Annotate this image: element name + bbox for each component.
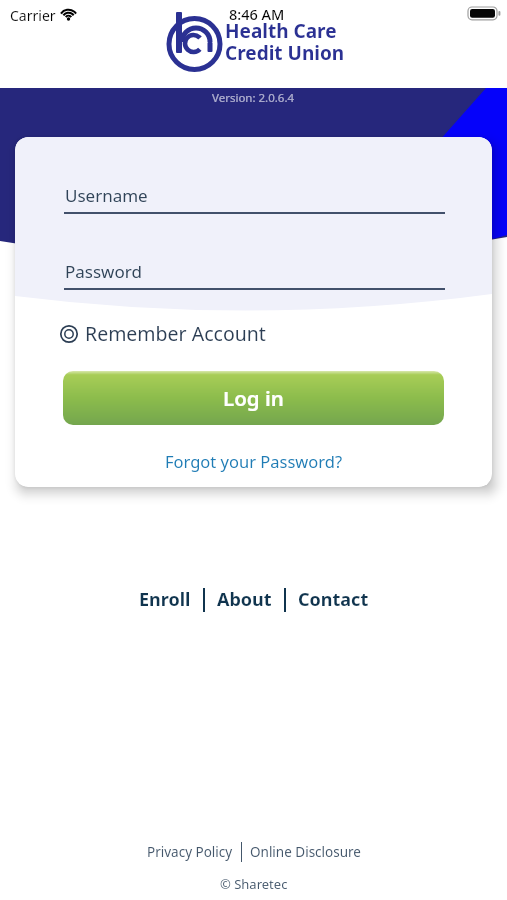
staticText: Health Care <box>225 18 337 44</box>
staticText: Username <box>65 184 148 207</box>
staticText: Version: 2.0.6.4 <box>212 90 295 106</box>
button[interactable]: Remember Account <box>59 320 266 344</box>
staticText: Carrier <box>10 6 56 25</box>
staticText: Log in <box>223 384 284 412</box>
button[interactable]: Username <box>64 173 445 214</box>
staticText: Forgot your Password? <box>165 450 343 472</box>
button[interactable]: Forgot your Password? <box>165 450 343 472</box>
staticText: Password <box>65 260 142 283</box>
staticText: About <box>217 587 272 612</box>
staticText: Contact <box>298 587 369 612</box>
staticText: © Sharetec <box>220 875 288 893</box>
staticText: Credit Union <box>225 40 345 66</box>
button[interactable]: Online Disclosure <box>250 843 361 861</box>
button[interactable]: Log in <box>63 371 444 425</box>
button[interactable]: Contact <box>298 587 369 612</box>
staticText: Privacy Policy <box>147 843 233 861</box>
staticText: Remember Account <box>85 320 266 344</box>
staticText: 8:46 AM <box>229 4 285 24</box>
button[interactable]: Enroll <box>139 587 191 612</box>
staticText: Online Disclosure <box>250 843 361 861</box>
button[interactable]: About <box>217 587 272 612</box>
staticText: Enroll <box>139 587 191 612</box>
button[interactable]: Password <box>64 249 445 290</box>
button[interactable]: Privacy Policy <box>147 843 233 861</box>
